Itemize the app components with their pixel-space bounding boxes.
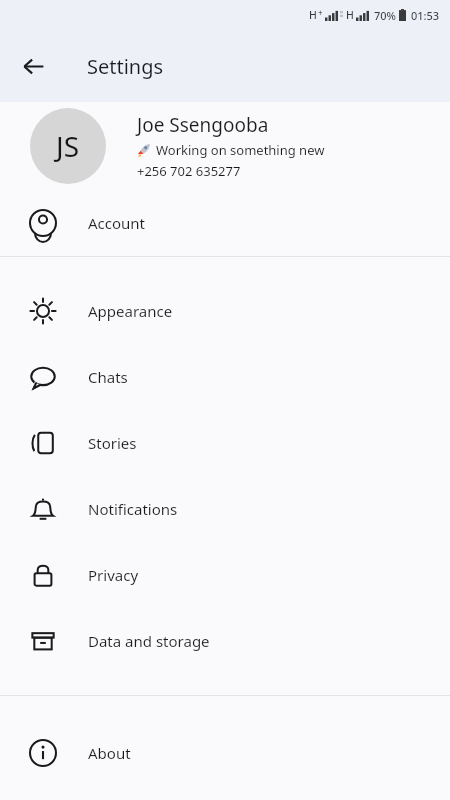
button[interactable]: Notifications: [0, 476, 450, 542]
staticText: H: [309, 8, 317, 22]
staticText: 01:53: [411, 8, 440, 23]
button[interactable]: Back: [13, 46, 53, 86]
button[interactable]: Stories: [0, 410, 450, 476]
staticText: Stories: [88, 433, 137, 453]
staticText: 70%: [374, 8, 396, 23]
staticText: JS: [56, 127, 80, 165]
staticText: Appearance: [88, 301, 173, 321]
button[interactable]: Data and storage: [0, 608, 450, 674]
button[interactable]: JS: [0, 102, 450, 190]
staticText: Joe Ssengooba: [137, 112, 269, 138]
staticText: Notifications: [88, 499, 178, 519]
staticText: Account: [88, 213, 146, 233]
staticText: Chats: [88, 367, 128, 387]
button[interactable]: Privacy: [0, 542, 450, 608]
staticText: Privacy: [88, 565, 139, 585]
button[interactable]: Account: [0, 190, 450, 256]
staticText: About: [88, 743, 131, 763]
button[interactable]: Chats: [0, 344, 450, 410]
staticText: Settings: [87, 53, 164, 80]
staticText: Data and storage: [88, 631, 210, 651]
staticText: +: [318, 7, 323, 18]
staticText: Working on something new: [156, 141, 325, 159]
button[interactable]: Appearance: [0, 278, 450, 344]
staticText: +256 702 635277: [137, 162, 241, 180]
staticText: H: [346, 8, 354, 22]
button[interactable]: About: [0, 720, 450, 786]
